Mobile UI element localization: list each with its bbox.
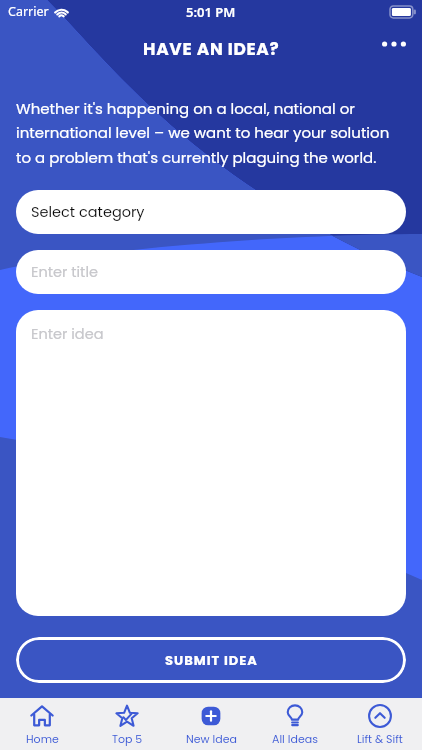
staticText: SUBMIT IDEA (165, 651, 258, 669)
staticText: 5:01 PM (186, 3, 236, 21)
staticText: Enter idea (31, 324, 104, 344)
button[interactable]: More options (376, 26, 412, 62)
staticText: Select category (31, 202, 145, 222)
button[interactable]: All Ideas (253, 698, 337, 750)
staticText: Carrier (8, 3, 49, 20)
button[interactable]: Home (0, 698, 84, 750)
button[interactable]: SUBMIT IDEA (16, 637, 406, 683)
staticText: Enter title (31, 262, 98, 282)
staticText: New Idea (186, 731, 237, 746)
button[interactable]: Enter idea (16, 310, 406, 616)
staticText: HAVE AN IDEA? (143, 37, 280, 61)
staticText: Whether it's happening on a local, natio… (16, 98, 405, 168)
staticText: All Ideas (272, 731, 318, 746)
button[interactable]: New Idea (169, 698, 253, 750)
staticText: Home (26, 731, 59, 746)
staticText: Top 5 (112, 731, 143, 746)
button[interactable]: Enter title (16, 250, 406, 294)
button[interactable]: Top 5 (85, 698, 169, 750)
button[interactable]: Select category (16, 190, 406, 234)
button[interactable]: Lift & Sift (338, 698, 422, 750)
staticText: Lift & Sift (357, 731, 403, 746)
